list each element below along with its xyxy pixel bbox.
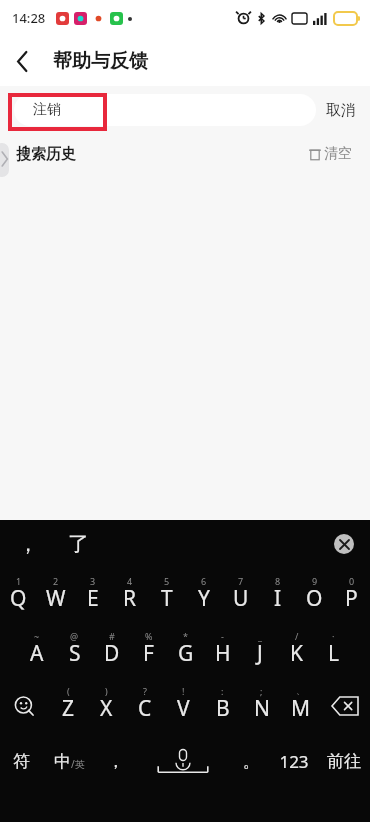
staticText: 中 [54, 751, 71, 772]
button[interactable]: Space, voice input [134, 733, 232, 789]
button[interactable]: Back [0, 39, 44, 83]
button[interactable]: Y [185, 568, 222, 623]
staticText: * [183, 630, 188, 642]
staticText: C [138, 694, 152, 723]
button[interactable]: R [111, 568, 148, 623]
staticText: ， [107, 751, 124, 772]
staticText: 123 [279, 750, 309, 773]
button[interactable]: U [222, 568, 259, 623]
button[interactable]: 。 [232, 733, 270, 789]
button[interactable]: J [241, 623, 278, 678]
button[interactable]: X [87, 678, 125, 733]
staticText: I [274, 584, 282, 613]
staticText: /英 [71, 757, 85, 771]
staticText: 2 [53, 575, 59, 587]
button[interactable]: O [296, 568, 333, 623]
button[interactable]: 123 [270, 733, 317, 789]
staticText: S [69, 639, 81, 668]
button[interactable]: 取消 [326, 101, 356, 120]
staticText: 注销 [33, 101, 61, 119]
staticText: P [345, 584, 358, 613]
staticText: U [233, 584, 249, 613]
staticText: L [328, 639, 340, 668]
staticText: ! [182, 685, 185, 697]
staticText: ? [143, 685, 147, 697]
button[interactable]: 符 [0, 733, 43, 789]
button[interactable]: V [164, 678, 203, 733]
button[interactable]: E [74, 568, 111, 623]
staticText: 6 [201, 575, 207, 587]
staticText: R [123, 584, 137, 613]
staticText: 1 [16, 575, 22, 587]
staticText: F [143, 639, 154, 668]
staticText: H [215, 639, 231, 668]
staticText: T [161, 584, 173, 613]
staticText: W [46, 584, 66, 613]
staticText: ~ [34, 630, 40, 642]
staticText: X [100, 694, 113, 723]
staticText: · [332, 630, 335, 642]
staticText: 7 [238, 575, 244, 587]
staticText: ( [67, 685, 70, 697]
button[interactable]: C [125, 678, 164, 733]
staticText: @ [70, 630, 79, 642]
staticText: 0 [349, 575, 355, 587]
staticText: Y [198, 584, 210, 613]
button[interactable]: L [315, 623, 352, 678]
staticText: 。 [243, 751, 260, 772]
staticText: 清空 [324, 145, 352, 163]
button[interactable]: K [278, 623, 315, 678]
button[interactable]: T [148, 568, 185, 623]
staticText: B [216, 694, 230, 723]
staticText: 4 [127, 575, 133, 587]
button[interactable]: H [204, 623, 241, 678]
staticText: % [145, 630, 153, 642]
button[interactable]: M [281, 678, 320, 733]
button[interactable]: Z [49, 678, 87, 733]
staticText: ; [260, 685, 263, 697]
button[interactable]: N [242, 678, 281, 733]
staticText: # [109, 630, 115, 642]
staticText: 帮助与反馈 [53, 49, 148, 73]
button[interactable]: A [18, 623, 56, 678]
button[interactable]: Close keyboard [334, 534, 354, 554]
staticText: _ [258, 630, 262, 642]
button[interactable]: P [333, 568, 370, 623]
staticText: M [291, 694, 311, 723]
staticText: D [104, 639, 120, 668]
button[interactable]: 清空 [305, 141, 356, 167]
staticText: K [290, 639, 303, 668]
staticText: O [306, 584, 323, 613]
button[interactable]: ， [96, 733, 134, 789]
button[interactable]: Backspace [320, 678, 370, 733]
button[interactable]: S [56, 623, 93, 678]
button[interactable]: 中 [43, 733, 96, 789]
button[interactable]: ， [18, 532, 38, 557]
button[interactable]: Q [0, 568, 37, 623]
button[interactable]: 了 [68, 531, 89, 557]
staticText: V [177, 694, 190, 723]
button[interactable]: G [167, 623, 204, 678]
staticText: 搜索历史 [16, 145, 76, 164]
staticText: 8 [275, 575, 281, 587]
button[interactable]: Emoji [0, 678, 49, 733]
staticText: N [254, 694, 270, 723]
staticText: : [221, 685, 224, 697]
staticText: 取消 [326, 101, 356, 120]
button[interactable]: B [203, 678, 242, 733]
button[interactable]: 注销 [14, 94, 316, 126]
button[interactable]: D [93, 623, 130, 678]
button[interactable]: I [259, 568, 296, 623]
button[interactable]: 前往 [317, 733, 370, 789]
staticText: J [257, 639, 263, 668]
staticText: 前往 [327, 751, 361, 772]
staticText: - [221, 630, 224, 642]
staticText: ) [105, 685, 108, 697]
staticText: Q [10, 584, 27, 613]
button[interactable]: W [37, 568, 74, 623]
button[interactable]: F [130, 623, 167, 678]
staticText: 、 [296, 685, 305, 696]
staticText: A [30, 639, 44, 668]
staticText: Z [62, 694, 75, 723]
staticText: / [295, 630, 299, 642]
